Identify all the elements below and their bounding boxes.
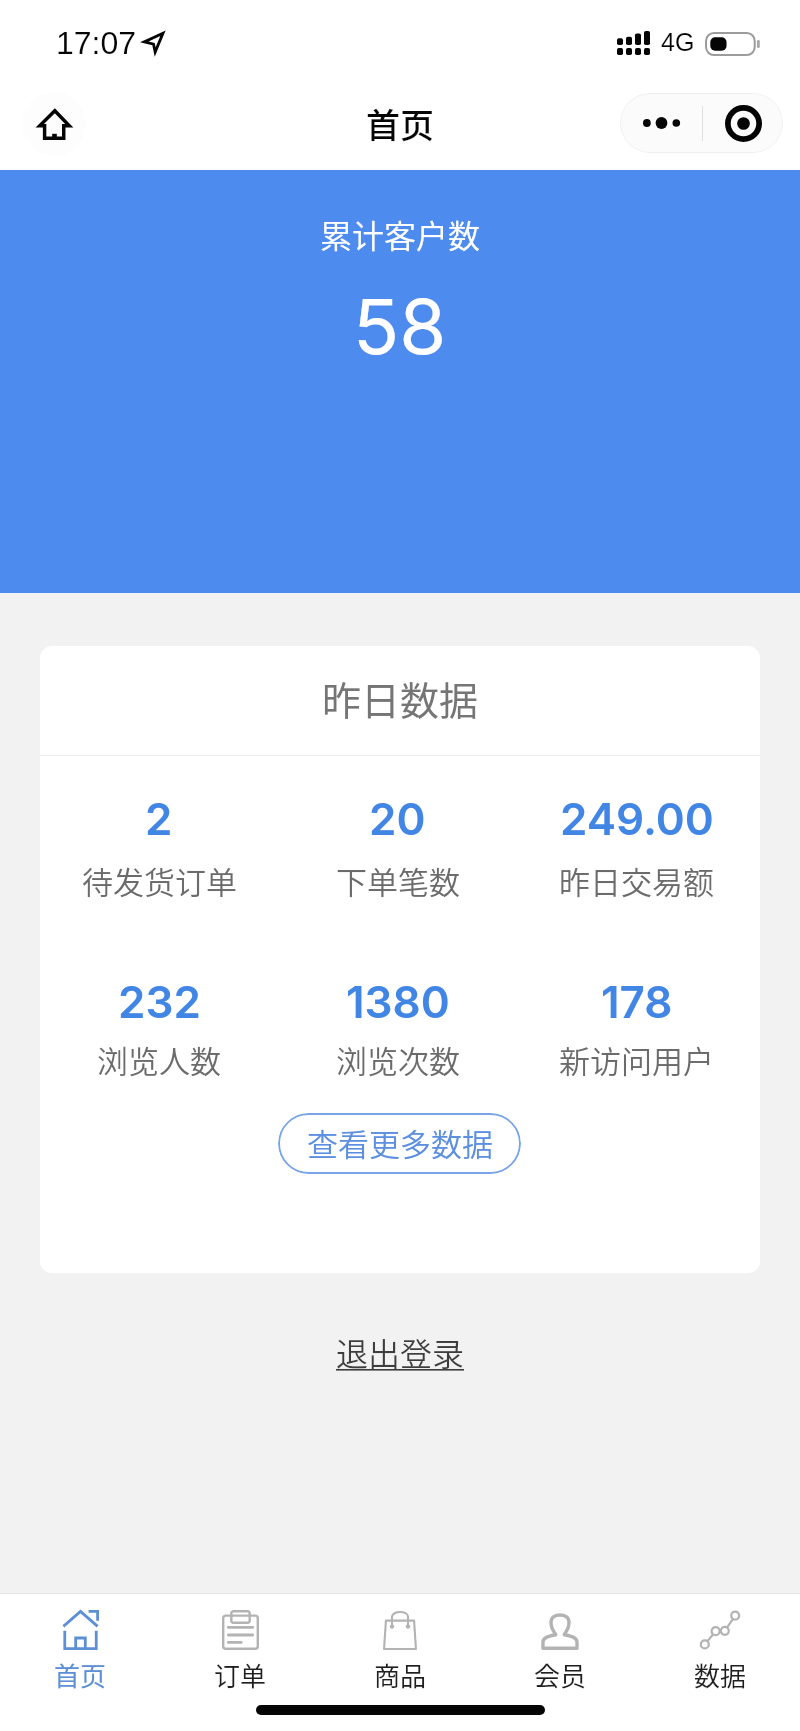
staticText: 查看更多数据 <box>307 1120 493 1165</box>
staticText: 下单笔数 <box>336 858 460 903</box>
staticText: 新访问用户 <box>559 1037 714 1082</box>
staticText: 249.00 <box>560 792 714 845</box>
staticText: 订单 <box>214 1656 267 1694</box>
staticText: 浏览人数 <box>97 1037 221 1082</box>
staticText: 数据 <box>694 1656 747 1694</box>
staticText: 累计客户数 <box>320 211 481 257</box>
staticText: 会员 <box>534 1656 587 1694</box>
button[interactable]: 退出登录 <box>336 1329 465 1375</box>
staticText: 待发货订单 <box>82 858 237 903</box>
staticText: 4G <box>661 28 695 56</box>
staticText: 1380 <box>346 975 450 1028</box>
staticText: 58 <box>353 280 447 372</box>
staticText: 浏览次数 <box>336 1037 460 1082</box>
button[interactable]: 商品 <box>320 1593 480 1731</box>
staticText: 20 <box>369 792 426 845</box>
staticText: 17:07 <box>56 25 137 61</box>
button[interactable]: More options <box>620 93 702 153</box>
staticText: 商品 <box>374 1656 427 1694</box>
staticText: 昨日交易额 <box>559 858 714 903</box>
staticText: 昨日数据 <box>322 670 479 726</box>
button[interactable]: Home <box>22 92 86 156</box>
staticText: 2 <box>145 792 173 845</box>
staticText: 232 <box>118 975 201 1028</box>
button[interactable]: Close mini program <box>703 93 783 153</box>
staticText: 178 <box>601 975 673 1028</box>
button[interactable]: 查看更多数据 <box>278 1113 521 1174</box>
button[interactable]: 数据 <box>640 1593 800 1731</box>
button[interactable]: 订单 <box>160 1593 320 1731</box>
button[interactable]: 会员 <box>480 1593 640 1731</box>
staticText: 首页 <box>54 1656 107 1694</box>
staticText: 首页 <box>366 99 434 148</box>
button[interactable]: 首页 <box>0 1593 160 1731</box>
